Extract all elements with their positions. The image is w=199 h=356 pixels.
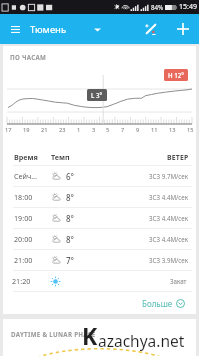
staticText: 5 (106, 126, 110, 134)
button[interactable]: 19:00 (3, 208, 196, 228)
staticText: ЗСЗ 3.9М/сек (149, 256, 189, 264)
staticText: L 3° (91, 91, 103, 99)
staticText: 19 (23, 126, 30, 134)
staticText: 15:49 (179, 2, 197, 12)
staticText: 8° (66, 234, 74, 245)
staticText: 3 (92, 126, 96, 134)
button[interactable]: Add location (170, 14, 196, 44)
button[interactable]: 21:00 (3, 250, 196, 270)
staticText: ЗСЗ 4.4М/сек (149, 214, 189, 222)
button[interactable]: Больше (139, 296, 188, 311)
staticText: 6° (66, 171, 74, 182)
staticText: 1 (77, 126, 81, 134)
staticText: ЗСЗ 4.4М/сек (149, 193, 189, 201)
staticText: 9 (136, 126, 140, 134)
staticText: 7 (121, 126, 125, 134)
staticText: ЗСЗ 9.7М/сек (149, 172, 189, 180)
staticText: 8° (66, 192, 74, 203)
staticText: ЗСЗ 4.4М/сек (149, 235, 189, 243)
staticText: Темп (51, 152, 101, 162)
staticText: 21 (41, 126, 48, 134)
staticText: Закат (170, 277, 187, 285)
button[interactable]: Edit (138, 14, 164, 44)
staticText: Время (14, 152, 51, 162)
staticText: 8° (66, 213, 74, 224)
staticText: 23 (59, 126, 66, 134)
staticText: 11 (151, 126, 158, 134)
staticText: Тюмень (30, 23, 67, 36)
staticText: 84% (151, 3, 164, 11)
staticText: 7° (66, 255, 74, 266)
staticText: 19:00 (14, 213, 52, 223)
button[interactable]: Open navigation menu (2, 14, 28, 44)
staticText: 21:20 (12, 276, 50, 286)
staticText: 13 (169, 126, 176, 134)
staticText: 18:00 (14, 192, 52, 202)
staticText: ВЕТЕР (167, 153, 189, 162)
staticText: azachya.net (98, 330, 185, 351)
button[interactable]: 18:00 (3, 187, 196, 207)
button[interactable]: Тюмень (30, 14, 105, 44)
staticText: DAYTIME & LUNAR PHASE (11, 330, 96, 338)
button[interactable]: Сейч… (3, 166, 196, 186)
staticText: 21:00 (14, 255, 52, 265)
staticText: K (82, 320, 98, 351)
staticText: Больше (142, 298, 173, 309)
staticText: 15 (187, 126, 194, 134)
staticText: 20:00 (14, 234, 52, 244)
staticText: H 12° (168, 71, 184, 79)
staticText: Сейч… (14, 171, 52, 181)
staticText: ПО ЧАСАМ (10, 53, 47, 61)
staticText: 17 (5, 126, 12, 134)
button[interactable]: 20:00 (3, 229, 196, 249)
button[interactable]: 21:20 (3, 271, 196, 291)
